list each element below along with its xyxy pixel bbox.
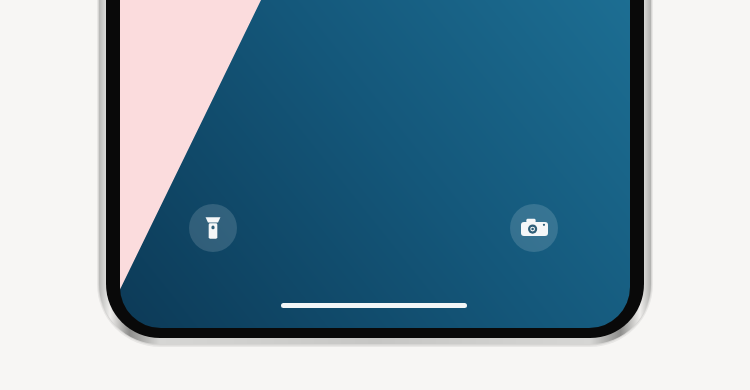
button[interactable]: Camera bbox=[510, 204, 558, 252]
button[interactable]: Flashlight bbox=[189, 204, 237, 252]
